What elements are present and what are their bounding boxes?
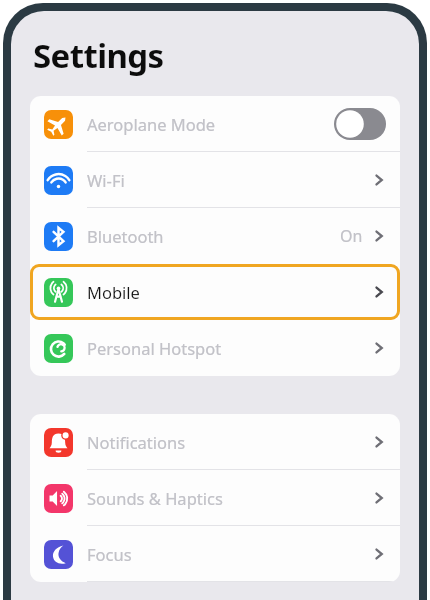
staticText: Wi-Fi (87, 169, 125, 191)
button[interactable]: Aeroplane Mode toggle, off (334, 108, 386, 140)
button[interactable]: Bluetooth (30, 208, 400, 264)
other: Open (372, 229, 386, 243)
staticText: Personal Hotspot (87, 337, 222, 359)
other: Open (372, 173, 386, 187)
button[interactable]: Wi-Fi (30, 152, 400, 208)
other: Open (372, 435, 386, 449)
staticText: Notifications (87, 431, 186, 453)
button[interactable]: Focus (30, 526, 400, 582)
other: Open (372, 341, 386, 355)
staticText: Mobile (87, 281, 140, 303)
staticText: Focus (87, 543, 132, 565)
other: Open (372, 547, 386, 561)
other: Open (372, 285, 386, 299)
other: Open (372, 491, 386, 505)
button[interactable]: Sounds & Haptics (30, 470, 400, 526)
staticText: Bluetooth (87, 225, 164, 247)
button[interactable]: Notifications (30, 414, 400, 470)
button[interactable]: Personal Hotspot (30, 320, 400, 376)
button[interactable]: Mobile (30, 264, 400, 320)
staticText: Settings (33, 33, 164, 78)
staticText: Aeroplane Mode (87, 113, 216, 135)
staticText: Sounds & Haptics (87, 487, 223, 509)
button[interactable]: Aeroplane Mode (30, 96, 400, 152)
staticText: On (340, 225, 363, 247)
